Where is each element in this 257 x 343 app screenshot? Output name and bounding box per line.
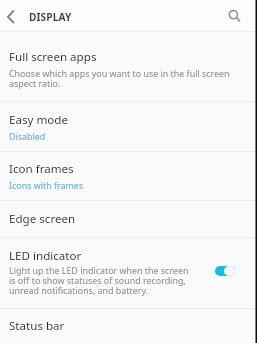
staticText: Status bar	[9, 318, 65, 334]
button[interactable]: Easy mode	[0, 102, 257, 151]
staticText: Icon frames	[9, 161, 74, 177]
staticText: Full screen apps	[9, 49, 97, 65]
staticText: Disabled	[9, 130, 46, 142]
button[interactable]: Edge screen	[0, 201, 257, 237]
button[interactable]: Search	[222, 0, 257, 31]
button[interactable]: Status bar	[0, 309, 257, 343]
staticText: Choose which apps you want to use in the…	[9, 67, 232, 90]
staticText: LED indicator	[9, 248, 82, 264]
staticText: Icons with frames	[9, 179, 84, 191]
button[interactable]: LED indicator	[0, 238, 257, 308]
staticText: Light up the LED indicator when the scre…	[9, 264, 195, 297]
staticText: Easy mode	[9, 112, 68, 128]
button[interactable]: Icon frames	[0, 152, 257, 200]
button[interactable]: LED indicator, on	[210, 238, 243, 308]
staticText: Edge screen	[9, 211, 76, 227]
button[interactable]: Full screen apps	[0, 32, 257, 101]
button[interactable]: Navigate up	[0, 0, 22, 31]
staticText: DISPLAY	[29, 10, 72, 24]
